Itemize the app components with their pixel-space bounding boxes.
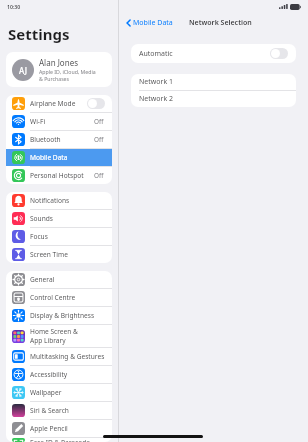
button[interactable]: Automatic [131, 44, 296, 63]
staticText: Airplane Mode [30, 99, 76, 108]
staticText: AJ [19, 65, 27, 76]
staticText: Focus [30, 232, 48, 241]
button[interactable]: Airplane Mode [6, 95, 112, 112]
button[interactable]: Bluetooth [6, 131, 112, 148]
button[interactable]: Accessibility [6, 366, 112, 383]
button[interactable]: Face ID & Passcode [6, 438, 112, 442]
button[interactable]: Display & Brightness [6, 307, 112, 324]
staticText: Off [94, 135, 104, 144]
staticText: Control Centre [30, 293, 76, 302]
staticText: Off [94, 171, 104, 180]
staticText: General [30, 275, 55, 284]
button[interactable]: Mobile Data [6, 149, 112, 166]
staticText: Siri & Search [30, 406, 69, 415]
staticText: Wallpaper [30, 388, 62, 397]
staticText: Accessibility [30, 370, 68, 379]
button[interactable]: Wallpaper [6, 384, 112, 401]
staticText: Off [94, 117, 104, 126]
staticText: Home Screen & [30, 327, 78, 336]
staticText: Network 1 [139, 77, 173, 87]
staticText: Screen Time [30, 250, 68, 259]
staticText: Apple Pencil [30, 424, 68, 433]
staticText: Network 2 [139, 94, 173, 104]
staticText: Automatic [139, 49, 270, 59]
staticText: Wi-Fi [30, 117, 46, 126]
button[interactable]: Mobile Data [126, 18, 173, 28]
staticText: Mobile Data [30, 153, 68, 162]
button[interactable]: Personal Hotspot [6, 167, 112, 184]
staticText: Personal Hotspot [30, 171, 84, 180]
button[interactable]: General [6, 271, 112, 288]
staticText: Bluetooth [30, 135, 61, 144]
staticText: Face ID & Passcode [30, 438, 90, 442]
button[interactable]: Network 2 [131, 91, 296, 107]
staticText: 10:30 [7, 3, 21, 10]
staticText: Display & Brightness [30, 311, 95, 320]
button[interactable]: Network 1 [131, 74, 296, 90]
button[interactable]: Siri & Search [6, 402, 112, 419]
button[interactable]: Sounds [6, 210, 112, 227]
button[interactable]: Focus [6, 228, 112, 245]
button[interactable]: AJ [6, 52, 112, 87]
staticText: Sounds [30, 214, 53, 223]
button[interactable]: Notifications [6, 192, 112, 209]
button[interactable]: Apple Pencil [6, 420, 112, 437]
button[interactable]: Toggle Automatic [270, 48, 288, 59]
staticText: App Library [30, 336, 66, 345]
button[interactable]: Home Screen & [6, 325, 112, 347]
staticText: Apple ID, iCloud, Media [39, 68, 96, 75]
button[interactable]: Multitasking & Gestures [6, 348, 112, 365]
button[interactable]: Wi-Fi [6, 113, 112, 130]
staticText: Network Selection [189, 18, 252, 28]
staticText: Settings [8, 24, 70, 44]
staticText: & Purchases [39, 75, 70, 82]
staticText: Alan Jones [39, 57, 78, 68]
button[interactable]: Toggle Airplane Mode [87, 98, 105, 109]
button[interactable]: Control Centre [6, 289, 112, 306]
staticText: Mobile Data [133, 18, 173, 28]
button[interactable]: Screen Time [6, 246, 112, 263]
staticText: Multitasking & Gestures [30, 352, 105, 361]
staticText: Notifications [30, 196, 70, 205]
